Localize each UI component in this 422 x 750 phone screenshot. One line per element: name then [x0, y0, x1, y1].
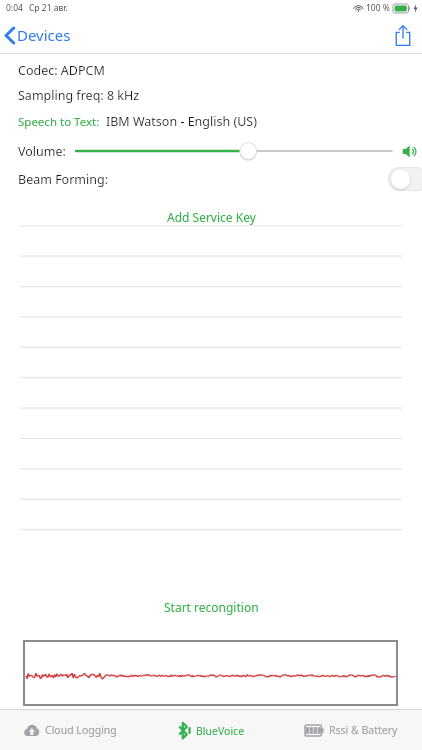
staticText: Rssi & Battery	[329, 723, 398, 737]
button[interactable]: Devices	[0, 21, 81, 49]
button[interactable]: Cloud Logging	[0, 710, 140, 750]
staticText: Sampling freq: 8 kHz	[18, 87, 140, 104]
staticText: 0:04	[6, 2, 23, 14]
button[interactable]: Add Service Key	[153, 204, 270, 230]
button[interactable]: Beam Forming toggle	[388, 167, 422, 191]
button[interactable]: Rssi & Battery	[281, 710, 422, 750]
staticText: Devices	[17, 25, 71, 45]
button[interactable]: Share	[384, 21, 422, 50]
staticText: Start recongition	[164, 599, 259, 615]
staticText: 100 %	[366, 2, 390, 14]
button[interactable]: BlueVoice	[140, 710, 281, 750]
staticText: Add Service Key	[167, 209, 256, 225]
staticText: Cloud Logging	[45, 723, 117, 737]
staticText: Codec: ADPCM	[18, 62, 105, 79]
staticText: Cp 21 aвr.	[29, 2, 68, 14]
staticText: Beam Forming:	[18, 171, 109, 188]
button[interactable]: Start recongition	[150, 594, 273, 620]
staticText: IBM Watson - English (US)	[106, 113, 257, 130]
button[interactable]: Volume	[400, 141, 420, 161]
staticText: Speech to Text:	[18, 114, 100, 130]
staticText: BlueVoice	[196, 724, 245, 738]
button[interactable]	[76, 138, 392, 164]
staticText: Volume:	[18, 143, 66, 160]
